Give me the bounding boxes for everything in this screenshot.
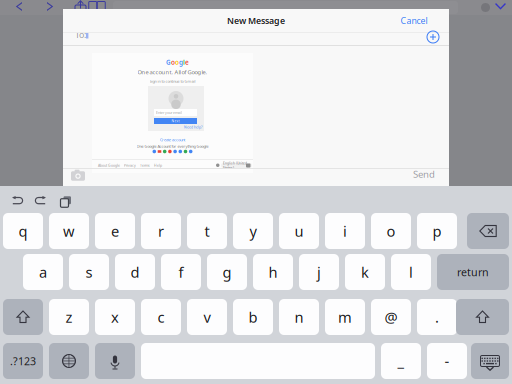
button[interactable]: Undo — [12, 196, 23, 205]
staticText: G — [166, 58, 171, 67]
staticText: n — [294, 307, 303, 327]
staticText: l — [409, 262, 413, 282]
button[interactable]: Key — [3, 299, 43, 335]
staticText: Cancel — [400, 14, 427, 26]
staticText: d — [130, 262, 139, 282]
staticText: .?123 — [10, 354, 36, 368]
staticText: v — [203, 307, 210, 327]
staticText: i — [343, 221, 347, 241]
staticText: a — [39, 262, 47, 282]
button[interactable]: return — [437, 254, 509, 290]
staticText: z — [65, 307, 72, 327]
staticText: Terms — [140, 163, 150, 168]
button[interactable]: d — [115, 254, 155, 290]
staticText: q — [18, 221, 27, 241]
button[interactable]: Tabs — [88, 1, 106, 12]
button[interactable]: w — [49, 213, 89, 249]
staticText: s — [85, 262, 92, 282]
staticText: f — [178, 262, 183, 282]
button[interactable]: _ — [381, 343, 421, 379]
staticText: w — [63, 221, 75, 241]
staticText: To: — [75, 28, 86, 40]
staticText: j — [317, 262, 321, 282]
staticText: k — [361, 262, 369, 282]
staticText: l — [183, 58, 185, 67]
staticText: b — [248, 307, 257, 327]
button[interactable]: Key — [49, 343, 89, 379]
staticText: Help — [154, 163, 162, 168]
button[interactable]: c — [141, 299, 181, 335]
button[interactable]: g — [207, 254, 247, 290]
button[interactable]: b — [233, 299, 273, 335]
button[interactable]: o — [371, 213, 411, 249]
staticText: Enter your email — [156, 110, 182, 115]
button[interactable]: f — [161, 254, 201, 290]
button[interactable]: Share — [74, 0, 87, 14]
button[interactable]: Forward — [45, 1, 55, 12]
staticText: c — [157, 307, 164, 327]
button[interactable]: l — [391, 254, 431, 290]
button[interactable]: e — [95, 213, 135, 249]
staticText: Sign in to continue to Gmail — [149, 78, 195, 84]
staticText: Send — [413, 167, 435, 181]
button[interactable]: x — [95, 299, 135, 335]
button[interactable]: Key — [467, 213, 509, 249]
button[interactable]: n — [279, 299, 319, 335]
staticText: - — [444, 351, 449, 371]
button[interactable]: j — [299, 254, 339, 290]
staticText: Create account — [160, 137, 185, 142]
staticText: Privacy — [124, 163, 136, 168]
button[interactable]: k — [345, 254, 385, 290]
button[interactable]: . — [417, 299, 457, 335]
staticText: g — [222, 262, 231, 282]
staticText: Next — [171, 119, 179, 123]
button[interactable]: - — [427, 343, 467, 379]
button[interactable]: Add contact — [427, 31, 439, 43]
staticText: u — [294, 221, 303, 241]
button[interactable]: @ — [371, 299, 411, 335]
staticText: m — [338, 307, 352, 327]
button[interactable]: r — [141, 213, 181, 249]
button[interactable]: Send — [407, 167, 441, 181]
button[interactable]: Key — [471, 343, 509, 379]
button[interactable]: Redo — [35, 196, 46, 205]
button[interactable]: v — [187, 299, 227, 335]
staticText: o — [171, 58, 175, 67]
button[interactable]: s — [69, 254, 109, 290]
staticText: r — [158, 221, 164, 241]
button[interactable]: y — [233, 213, 273, 249]
button[interactable]: m — [325, 299, 365, 335]
button[interactable]: u — [279, 213, 319, 249]
staticText: @ — [384, 307, 397, 327]
button[interactable]: Cancel — [394, 9, 434, 32]
staticText: e — [185, 58, 189, 67]
staticText: p — [432, 221, 441, 241]
staticText: t — [204, 221, 209, 241]
staticText: o — [175, 58, 179, 67]
button[interactable]: Key — [95, 343, 135, 379]
staticText: e — [111, 221, 119, 241]
staticText: About Google — [98, 163, 120, 168]
button[interactable]: i — [325, 213, 365, 249]
staticText: One Google Account for everything Google — [136, 143, 208, 149]
button[interactable]: q — [3, 213, 43, 249]
staticText: New Message — [227, 14, 285, 26]
button[interactable]: Key — [456, 299, 509, 335]
button[interactable]: p — [417, 213, 457, 249]
button[interactable]: Paste — [59, 195, 70, 206]
button[interactable]: a — [23, 254, 63, 290]
staticText: y — [249, 221, 256, 241]
staticText: . — [435, 307, 439, 327]
button[interactable]: .?123 — [3, 343, 43, 379]
staticText: o — [386, 221, 395, 241]
button[interactable]: Back — [14, 1, 24, 12]
button[interactable]: h — [253, 254, 293, 290]
button[interactable]: z — [49, 299, 89, 335]
staticText: _ — [397, 351, 404, 371]
button[interactable]: t — [187, 213, 227, 249]
staticText: x — [111, 307, 119, 327]
staticText: g — [179, 58, 183, 67]
staticText: One account. All of Google. — [137, 68, 207, 76]
